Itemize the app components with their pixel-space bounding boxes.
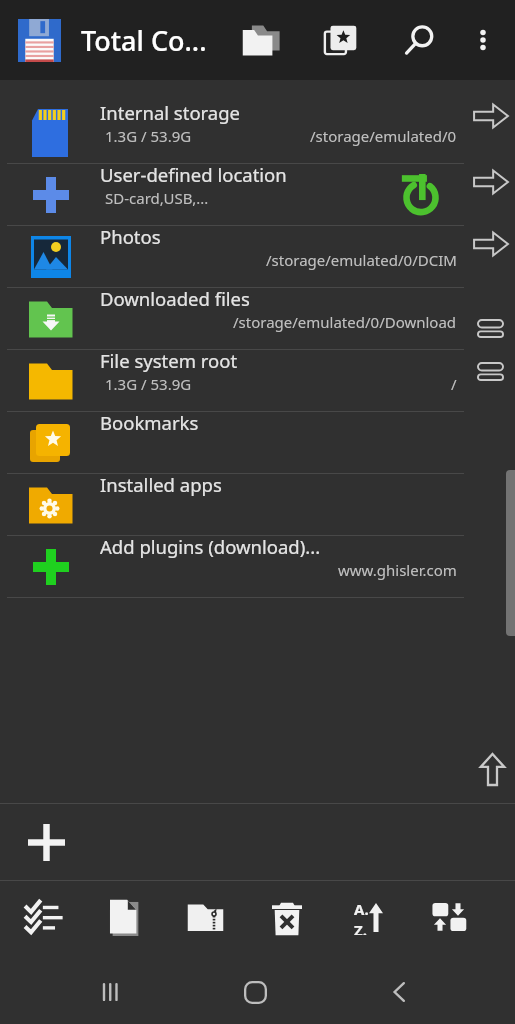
staticText: SD-card,USB,... — [105, 188, 209, 208]
staticText: www.ghisler.com — [338, 560, 457, 580]
button[interactable]: Home — [231, 968, 279, 1016]
staticText: Internal storage — [100, 100, 241, 125]
button[interactable]: New tab — [22, 818, 70, 866]
button[interactable]: Select files — [3, 881, 84, 953]
staticText: A. — [354, 899, 369, 919]
staticText: File system root — [100, 348, 238, 373]
button[interactable]: User-defined location — [0, 164, 515, 226]
button[interactable]: Photos — [0, 226, 515, 288]
button[interactable]: Back — [375, 968, 423, 1016]
staticText: Total Co... — [81, 22, 207, 59]
button[interactable]: Installed apps — [0, 474, 515, 536]
button[interactable]: Sort by name — [327, 881, 408, 953]
staticText: User-defined location — [100, 162, 287, 187]
button[interactable]: File system root — [0, 350, 515, 412]
button[interactable]: Add plugins (download)... — [0, 536, 515, 598]
button[interactable]: Downloaded files — [0, 288, 515, 350]
button[interactable]: Recent apps — [86, 968, 134, 1016]
staticText: Bookmarks — [100, 410, 199, 435]
button[interactable]: Open directory — [235, 14, 287, 66]
button[interactable]: More options — [459, 16, 507, 64]
button[interactable]: Delete — [246, 881, 327, 953]
staticText: Add plugins (download)... — [100, 534, 321, 559]
staticText: 1.3G / 53.9G — [105, 126, 192, 146]
button[interactable]: New file — [84, 881, 165, 953]
button[interactable]: Search — [393, 14, 445, 66]
button[interactable]: Bookmarks — [314, 14, 366, 66]
staticText: /storage/emulated/0 — [310, 126, 457, 146]
staticText: Installed apps — [100, 472, 222, 497]
staticText: Z. — [354, 920, 367, 935]
staticText: Photos — [100, 224, 161, 249]
staticText: 1.3G / 53.9G — [105, 374, 192, 394]
button[interactable]: Go up one level — [473, 750, 511, 788]
staticText: /storage/emulated/0/Download — [233, 312, 457, 332]
staticText: Downloaded files — [100, 286, 250, 311]
staticText: / — [451, 374, 457, 394]
staticText: /storage/emulated/0/DCIM — [266, 250, 457, 270]
button[interactable]: Internal storage — [0, 102, 515, 164]
button[interactable]: Bookmarks — [0, 412, 515, 474]
button[interactable]: Exchange panels — [408, 881, 489, 953]
button[interactable]: Zip — [165, 881, 246, 953]
